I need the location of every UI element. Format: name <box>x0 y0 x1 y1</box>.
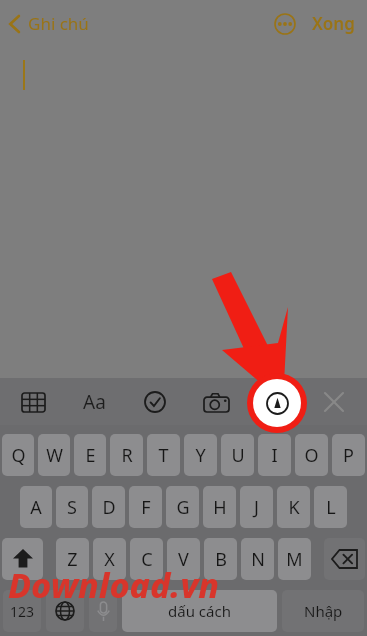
staticText: H <box>213 495 227 520</box>
button[interactable]: P <box>332 434 365 476</box>
staticText: Aa <box>83 389 106 415</box>
button[interactable]: Format text <box>75 383 113 421</box>
button[interactable]: Nhập <box>282 590 364 632</box>
button[interactable]: Xong <box>310 8 357 39</box>
staticText: Download.vn <box>8 562 220 608</box>
button[interactable]: Table <box>14 383 52 421</box>
button[interactable]: V <box>167 538 200 580</box>
button[interactable]: E <box>74 434 106 476</box>
staticText: J <box>254 495 259 520</box>
staticText: dấu cách <box>168 601 231 621</box>
button[interactable]: X <box>93 538 126 580</box>
button[interactable]: Change keyboard <box>46 590 84 632</box>
staticText: D <box>102 495 116 520</box>
button[interactable]: H <box>203 486 236 528</box>
button[interactable]: M <box>278 538 311 580</box>
button[interactable]: R <box>110 434 143 476</box>
button[interactable]: G <box>166 486 199 528</box>
button[interactable]: F <box>129 486 162 528</box>
button[interactable]: L <box>314 486 347 528</box>
button[interactable]: A <box>20 486 52 528</box>
staticText: M <box>286 547 303 572</box>
staticText: Y <box>195 443 206 468</box>
button[interactable]: dấu cách <box>122 590 277 632</box>
button[interactable]: K <box>277 486 310 528</box>
staticText: T <box>158 443 169 468</box>
button[interactable]: Q <box>2 434 34 476</box>
staticText: 123 <box>10 602 35 621</box>
staticText: U <box>231 443 245 468</box>
button[interactable]: O <box>295 434 328 476</box>
button[interactable]: Close keyboard <box>315 383 353 421</box>
button[interactable]: More options <box>270 9 300 39</box>
button[interactable]: U <box>221 434 254 476</box>
staticText: V <box>178 547 189 572</box>
staticText: L <box>326 495 336 520</box>
button[interactable]: N <box>241 538 274 580</box>
staticText: K <box>288 495 300 520</box>
staticText: R <box>121 443 133 468</box>
button[interactable]: W <box>38 434 70 476</box>
staticText: I <box>271 443 278 468</box>
staticText: F <box>141 495 151 520</box>
button[interactable]: I <box>258 434 291 476</box>
staticText: X <box>104 547 115 572</box>
button[interactable]: T <box>147 434 180 476</box>
button[interactable]: Dictate <box>89 590 117 632</box>
button[interactable]: Shift <box>2 538 43 580</box>
staticText: G <box>176 495 190 520</box>
staticText: N <box>251 547 265 572</box>
staticText: A <box>30 495 42 520</box>
button[interactable]: C <box>130 538 163 580</box>
staticText: Ghi chú <box>28 12 89 35</box>
staticText: Xong <box>312 12 355 35</box>
staticText: E <box>85 443 96 468</box>
staticText: W <box>46 443 63 468</box>
button[interactable]: D <box>92 486 125 528</box>
button[interactable]: Markup <box>262 388 292 418</box>
button[interactable]: Checklist <box>136 383 174 421</box>
staticText: P <box>343 443 354 468</box>
staticText: Nhập <box>304 601 343 621</box>
button[interactable]: J <box>240 486 273 528</box>
button[interactable]: Camera <box>197 383 235 421</box>
button[interactable]: B <box>204 538 237 580</box>
button[interactable]: Ghi chú <box>8 12 89 35</box>
button[interactable]: Y <box>184 434 217 476</box>
button[interactable]: Z <box>56 538 89 580</box>
button[interactable]: S <box>56 486 88 528</box>
staticText: C <box>141 547 153 572</box>
staticText: O <box>304 443 319 468</box>
staticText: S <box>67 495 77 520</box>
staticText: B <box>215 547 227 572</box>
button[interactable]: Backspace <box>324 538 365 580</box>
staticText: Z <box>67 547 78 572</box>
staticText: Q <box>11 443 26 468</box>
button[interactable]: Numbers <box>3 590 41 632</box>
